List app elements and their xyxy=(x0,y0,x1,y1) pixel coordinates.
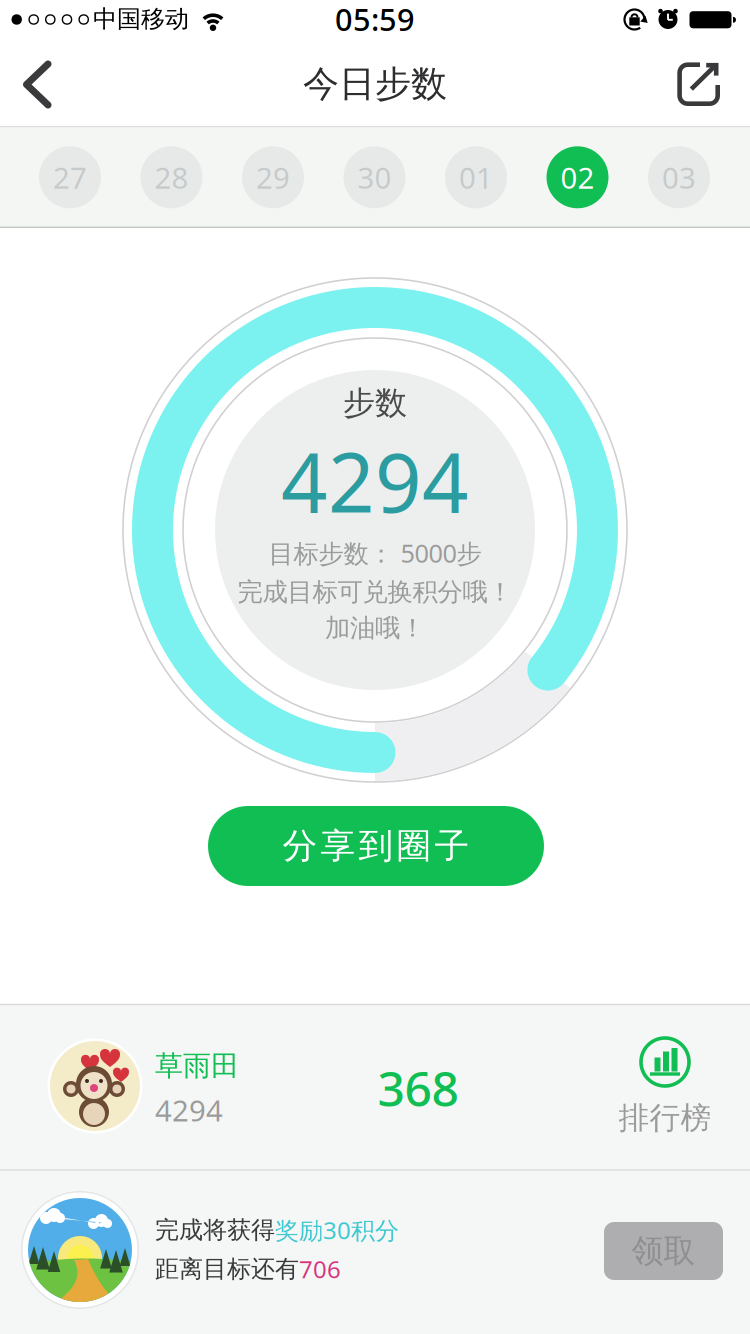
button[interactable]: 01 xyxy=(445,146,507,208)
staticText: 30 xyxy=(357,158,391,197)
button[interactable]: 02 xyxy=(546,146,608,208)
staticText: 完成将获得 xyxy=(155,1215,275,1245)
staticText: 03 xyxy=(662,158,696,197)
button[interactable]: 28 xyxy=(140,146,202,208)
button[interactable]: Back xyxy=(0,40,76,128)
staticText: 领取 xyxy=(631,1231,695,1271)
staticText: 368 xyxy=(377,1056,458,1120)
staticText: 目标步数： 5000步 xyxy=(268,536,481,570)
button[interactable]: 30 xyxy=(343,146,405,208)
staticText: 27 xyxy=(53,158,87,197)
staticText: 加油哦！ xyxy=(325,612,425,643)
button[interactable]: 29 xyxy=(242,146,304,208)
staticText: 距离目标还有 xyxy=(155,1254,299,1284)
staticText: 28 xyxy=(154,158,188,197)
button[interactable]: 27 xyxy=(39,146,101,208)
button[interactable]: 分享到圈子 xyxy=(208,806,544,886)
button[interactable]: 排行榜 xyxy=(605,1030,725,1150)
staticText: 01 xyxy=(459,158,493,197)
staticText: 4294 xyxy=(281,427,469,535)
button[interactable]: 03 xyxy=(648,146,710,208)
staticText: 完成目标可兑换积分哦！ xyxy=(237,576,512,607)
staticText: 中国移动 xyxy=(93,4,189,34)
staticText: 05:59 xyxy=(335,0,415,39)
staticText: 706 xyxy=(299,1253,341,1285)
staticText: 29 xyxy=(256,158,290,197)
staticText: 分享到圈子 xyxy=(282,825,469,867)
staticText: 步数 xyxy=(343,383,407,423)
staticText: 今日步数 xyxy=(303,62,447,106)
staticText: 02 xyxy=(560,158,594,197)
button[interactable]: 领取 xyxy=(604,1222,723,1280)
staticText: 排行榜 xyxy=(618,1099,711,1137)
button[interactable]: Share xyxy=(663,49,733,119)
staticText: 4294 xyxy=(155,1090,223,1129)
staticText: 奖励30积分 xyxy=(275,1214,399,1246)
staticText: 草雨田 xyxy=(155,1049,239,1083)
